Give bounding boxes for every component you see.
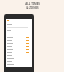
staticText: & ZONES	[26, 6, 39, 10]
button[interactable]	[6, 57, 32, 60]
button[interactable]	[6, 36, 32, 39]
staticText: ALL TIMES	[25, 2, 40, 6]
button[interactable]	[6, 45, 32, 48]
button[interactable]	[6, 54, 32, 57]
button[interactable]	[6, 48, 32, 51]
button[interactable]	[6, 63, 32, 66]
button[interactable]	[6, 60, 32, 63]
button[interactable]	[6, 39, 32, 42]
button[interactable]	[6, 51, 32, 54]
button[interactable]	[6, 42, 32, 45]
